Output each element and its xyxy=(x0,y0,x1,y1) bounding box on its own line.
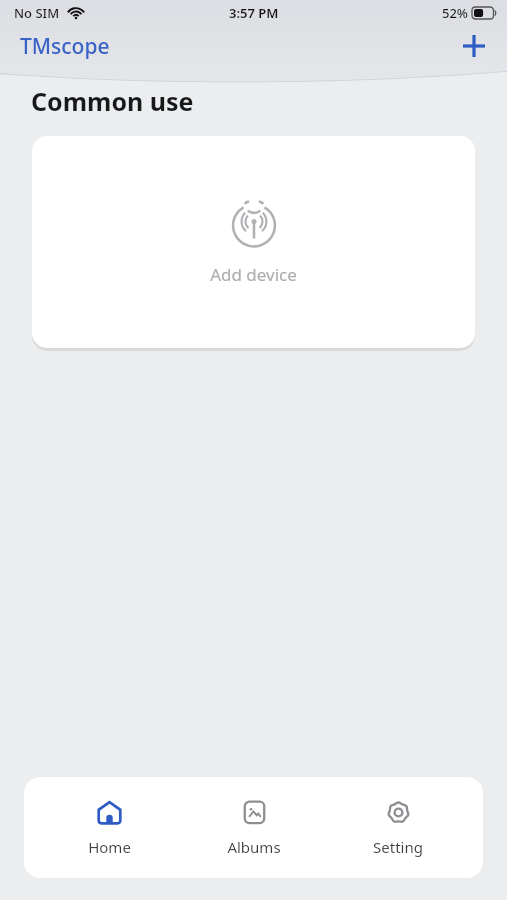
button[interactable]: Home xyxy=(49,791,169,865)
staticText: 52% xyxy=(442,4,468,22)
staticText: Albums xyxy=(227,837,281,857)
staticText: Common use xyxy=(31,84,194,118)
staticText: TMscope xyxy=(20,32,110,61)
staticText: No SIM xyxy=(14,4,60,22)
button[interactable]: TMscope xyxy=(14,30,116,63)
staticText: Home xyxy=(88,837,131,857)
staticText: Setting xyxy=(373,837,423,857)
staticText: 3:57 PM xyxy=(229,4,279,22)
button[interactable]: Add device xyxy=(32,136,475,348)
button[interactable]: Add xyxy=(455,27,493,65)
staticText: Add device xyxy=(210,263,297,286)
button[interactable]: Albums xyxy=(194,791,314,865)
button[interactable]: Setting xyxy=(338,791,458,865)
